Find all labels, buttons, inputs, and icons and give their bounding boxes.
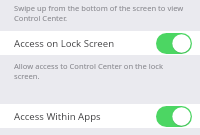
staticText: Swipe up from the bottom of the screen t… — [14, 3, 188, 23]
staticText: Access Within Apps — [14, 110, 156, 123]
button[interactable]: Access on Lock Screen — [0, 31, 200, 55]
button[interactable]: Access Within Apps toggle, on — [156, 106, 192, 127]
staticText: Allow access to Control Center on the lo… — [14, 61, 188, 81]
button[interactable]: Access on Lock Screen toggle, on — [156, 33, 192, 54]
staticText: Access on Lock Screen — [14, 37, 156, 50]
button[interactable]: Access Within Apps — [0, 104, 200, 128]
